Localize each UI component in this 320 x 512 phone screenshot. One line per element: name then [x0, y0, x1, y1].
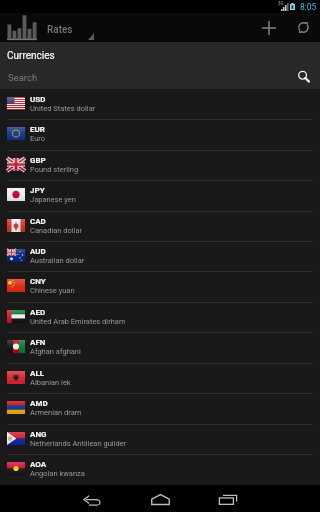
button[interactable]: Rates	[0, 13, 320, 42]
staticText: Angolan kwanza	[30, 469, 85, 478]
button[interactable]: EUR	[0, 119, 320, 149]
staticText: Chinese yuan	[30, 286, 75, 295]
staticText: United Arab Emirates dirham	[30, 317, 126, 326]
button[interactable]: CAD	[0, 211, 320, 241]
button[interactable]: Recent apps	[208, 485, 248, 512]
staticText: USD	[30, 95, 46, 104]
staticText: ANG	[30, 430, 47, 439]
button[interactable]: GBP	[0, 150, 320, 180]
staticText: United States dollar	[30, 104, 96, 113]
staticText: Albanian lek	[30, 378, 71, 387]
staticText: AFN	[30, 338, 46, 347]
staticText: CNY	[30, 277, 46, 286]
staticText: Currencies	[7, 50, 55, 62]
button[interactable]: AMD	[0, 393, 320, 423]
button[interactable]: AUD	[0, 241, 320, 271]
staticText: JPY	[30, 186, 45, 195]
button[interactable]: USD	[0, 89, 320, 119]
staticText: Afghan afghani	[30, 347, 81, 356]
button[interactable]: Refresh rates	[286, 13, 320, 42]
staticText: AUD	[30, 247, 46, 256]
staticText: Netherlands Antillean guilder	[30, 439, 127, 448]
staticText: Pound sterling	[30, 165, 79, 174]
staticText: ALL	[30, 369, 45, 378]
staticText: 3G	[278, 1, 284, 6]
staticText: GBP	[30, 156, 46, 165]
staticText: Armenian dram	[30, 408, 82, 417]
button[interactable]: JPY	[0, 180, 320, 210]
staticText: Search	[8, 72, 38, 83]
staticText: Canadian dollar	[30, 226, 83, 235]
button[interactable]: Search	[0, 65, 320, 89]
staticText: 8:05	[300, 2, 317, 12]
staticText: AOA	[30, 460, 47, 469]
staticText: AED	[30, 308, 46, 317]
staticText: Euro	[30, 134, 46, 143]
staticText: Rates	[47, 24, 73, 36]
button[interactable]: CNY	[0, 271, 320, 301]
button[interactable]: AFN	[0, 332, 320, 362]
button[interactable]: AED	[0, 302, 320, 332]
button[interactable]: ANG	[0, 424, 320, 454]
staticText: CAD	[30, 217, 46, 226]
staticText: AMD	[30, 399, 48, 408]
staticText: Japanese yen	[30, 195, 76, 204]
button[interactable]: ALL	[0, 363, 320, 393]
button[interactable]: Back	[72, 485, 112, 512]
button[interactable]: Home	[140, 485, 180, 512]
staticText: EUR	[30, 125, 45, 134]
staticText: Australian dollar	[30, 256, 85, 265]
button[interactable]: AOA	[0, 454, 320, 484]
button[interactable]: Add currency	[252, 13, 286, 42]
